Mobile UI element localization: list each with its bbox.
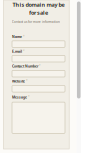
staticText: * [39,64,41,68]
staticText: * [23,49,25,53]
staticText: Website [12,79,25,83]
staticText: Message [12,95,27,99]
staticText: E-mail [12,49,22,54]
staticText: Contact Number [12,64,38,68]
staticText: Contact us for more information [12,20,60,24]
staticText: for sale [29,9,48,16]
staticText: Name [12,34,22,39]
staticText: * [23,34,25,38]
staticText: * [28,95,30,99]
staticText: This domain may be [12,1,64,8]
staticText: * [26,79,28,83]
